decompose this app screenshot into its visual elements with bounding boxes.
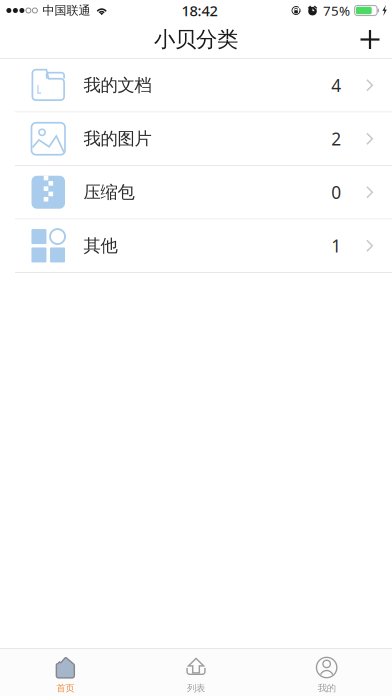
staticText: 我的文档 bbox=[83, 75, 151, 96]
button[interactable]: 其他 bbox=[0, 219, 392, 273]
button[interactable]: 我的图片 bbox=[0, 112, 392, 166]
staticText: 1 bbox=[331, 234, 341, 257]
button[interactable]: 首页 bbox=[0, 649, 131, 696]
staticText: 其他 bbox=[83, 235, 117, 256]
staticText: 中国联通 bbox=[43, 3, 91, 18]
button[interactable]: Add bbox=[348, 21, 392, 58]
staticText: 75% bbox=[323, 2, 350, 19]
staticText: 我的 bbox=[318, 682, 336, 694]
staticText: 压缩包 bbox=[83, 182, 134, 203]
staticText: 小贝分类 bbox=[154, 26, 238, 53]
staticText: 我的图片 bbox=[83, 128, 151, 149]
staticText: 18:42 bbox=[182, 1, 218, 20]
button[interactable]: 列表 bbox=[131, 649, 261, 696]
staticText: 4 bbox=[331, 74, 341, 97]
button[interactable]: 我的 bbox=[261, 649, 392, 696]
button[interactable]: 压缩包 bbox=[0, 166, 392, 219]
button[interactable]: 我的文档 bbox=[0, 59, 392, 112]
staticText: 0 bbox=[331, 181, 341, 204]
staticText: 首页 bbox=[56, 682, 74, 694]
staticText: 列表 bbox=[187, 682, 205, 694]
staticText: 2 bbox=[331, 127, 341, 150]
